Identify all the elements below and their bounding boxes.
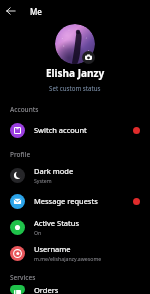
button[interactable]: Username <box>0 240 150 266</box>
button[interactable]: Switch account <box>0 117 150 143</box>
button[interactable]: Set custom status <box>45 83 105 93</box>
staticText: Active Status <box>34 218 79 228</box>
button[interactable]: Change photo <box>82 51 95 64</box>
staticText: Username <box>34 244 71 254</box>
button[interactable]: Dark mode <box>0 162 150 188</box>
staticText: Orders <box>34 285 59 294</box>
staticText: Elisha Janzy <box>46 66 105 80</box>
staticText: Switch account <box>34 125 87 135</box>
staticText: Services <box>10 273 36 282</box>
staticText: Set custom status <box>49 84 101 92</box>
button[interactable]: Back <box>0 0 22 22</box>
button[interactable]: Profile photo <box>55 24 95 64</box>
staticText: Me <box>30 6 42 17</box>
button[interactable]: Orders <box>0 285 150 294</box>
button[interactable]: Message requests <box>0 188 150 214</box>
button[interactable]: Active Status <box>0 214 150 240</box>
staticText: m.me/elishajanzy.awesome <box>34 255 102 262</box>
staticText: On <box>34 229 42 236</box>
staticText: Message requests <box>34 196 98 206</box>
staticText: System <box>34 177 52 184</box>
staticText: Dark mode <box>34 166 74 176</box>
staticText: Accounts <box>10 105 39 114</box>
staticText: Profile <box>10 150 31 159</box>
